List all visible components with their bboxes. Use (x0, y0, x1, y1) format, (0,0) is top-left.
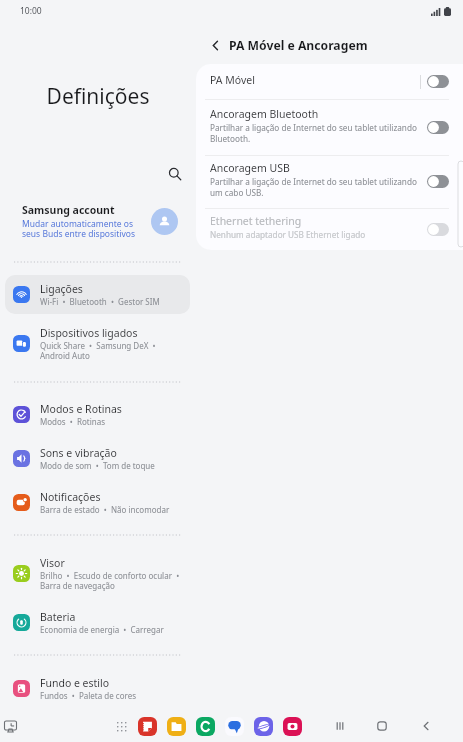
staticText: Brilho • Escudo de conforto ocular • Bar… (40, 570, 180, 591)
button[interactable]: Alternar (427, 121, 449, 134)
staticText: Notificações (40, 490, 101, 504)
staticText: PA Móvel (210, 73, 255, 87)
button[interactable]: Dispositivos ligados (5, 320, 190, 366)
button[interactable]: Aplicação (196, 717, 215, 736)
button[interactable]: Modos e Rotinas (5, 395, 190, 434)
button[interactable]: Recentes (330, 716, 350, 736)
button[interactable]: Aplicação (138, 717, 157, 736)
staticText: 10:00 (20, 5, 42, 17)
button[interactable]: Fundo e estilo (5, 669, 190, 708)
button[interactable]: Ancoragem USB (196, 155, 463, 208)
button[interactable]: Aplicação (283, 717, 302, 736)
staticText: Barra de estado • Não incomodar (40, 504, 170, 515)
button[interactable]: Samsung account (0, 199, 196, 243)
button[interactable]: Alternar (427, 175, 449, 188)
staticText: Economia de energia • Carregar (40, 624, 164, 635)
staticText: Partilhar a ligação de Internet do seu t… (210, 122, 417, 144)
staticText: Fundos • Paleta de cores (40, 690, 136, 701)
staticText: Dispositivos ligados (40, 326, 138, 340)
button[interactable]: Alternar (427, 75, 449, 88)
staticText: Visor (40, 556, 65, 570)
staticText: Modos e Rotinas (40, 402, 122, 416)
button[interactable]: Ancoragem Bluetooth (196, 99, 463, 155)
button[interactable]: Voltar (203, 33, 227, 57)
button[interactable]: Pesquisar (160, 159, 189, 188)
staticText: Partilhar a ligação de Internet do seu t… (210, 176, 417, 198)
staticText: Ancoragem USB (210, 161, 290, 175)
staticText: Wi-Fi • Bluetooth • Gestor SIM (40, 296, 160, 307)
button[interactable]: Início (372, 716, 392, 736)
button[interactable]: Sons e vibração (5, 439, 190, 478)
button[interactable]: Ethernet tethering (196, 208, 463, 250)
staticText: Quick Share • Samsung DeX • Android Auto (40, 340, 156, 361)
staticText: Definições (0, 82, 196, 111)
staticText: Bateria (40, 610, 76, 624)
staticText: Modos • Rotinas (40, 416, 106, 427)
button[interactable]: Ligações (5, 275, 190, 314)
button[interactable]: Voltar (416, 716, 436, 736)
button[interactable]: Aplicação (225, 717, 244, 736)
staticText: Modo de som • Tom de toque (40, 460, 155, 471)
button[interactable]: Aplicação (167, 717, 186, 736)
button[interactable]: Aplicação (254, 717, 273, 736)
button[interactable]: Capturar ecrã (0, 716, 20, 736)
button[interactable]: Bateria (5, 603, 190, 642)
staticText: Ethernet tethering (210, 214, 302, 228)
staticText: Ligações (40, 282, 83, 296)
button[interactable]: Notificações (5, 483, 190, 522)
button[interactable]: Alternar (427, 223, 449, 236)
button[interactable]: Visor (5, 550, 190, 596)
staticText: PA Móvel e Ancoragem (229, 37, 368, 54)
staticText: Ancoragem Bluetooth (210, 107, 319, 121)
staticText: Samsung account (22, 203, 115, 217)
staticText: Fundo e estilo (40, 676, 110, 690)
staticText: Sons e vibração (40, 446, 117, 460)
button[interactable]: PA Móvel (196, 64, 463, 99)
staticText: Mudar automaticamente os seus Buds entre… (22, 218, 136, 239)
staticText: Nenhum adaptador USB Ethernet ligado (210, 229, 366, 240)
button[interactable]: Aplicações (112, 716, 130, 736)
